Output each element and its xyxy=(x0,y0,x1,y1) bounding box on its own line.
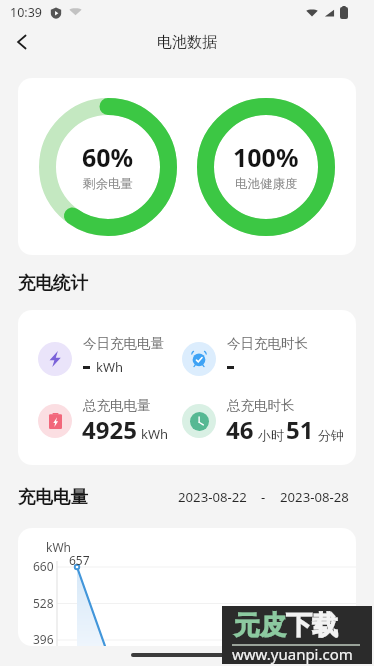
staticText: 4925 xyxy=(82,413,137,446)
staticText: 10:39 xyxy=(10,4,42,21)
staticText: 60% xyxy=(82,140,134,174)
button[interactable]: 总充电时长 xyxy=(162,394,356,444)
staticText: 电池健康度 xyxy=(235,176,298,192)
staticText: 电池数据 xyxy=(157,33,217,52)
staticText: 剩余电量 xyxy=(83,176,133,192)
staticText: 总充电时长 xyxy=(227,397,295,414)
staticText: kWh xyxy=(96,358,124,376)
staticText: 100% xyxy=(233,140,299,174)
staticText: 今日充电电量 xyxy=(83,335,164,352)
staticText: 2023-08-22 xyxy=(178,488,247,506)
button[interactable]: 今日充电电量 xyxy=(18,332,162,382)
staticText: 660 xyxy=(33,558,54,574)
staticText: 396 xyxy=(33,631,54,646)
staticText: 51 xyxy=(286,413,314,446)
staticText: 657 xyxy=(69,552,90,568)
staticText: 46 xyxy=(226,413,254,446)
staticText: 下载 xyxy=(286,609,338,642)
staticText: 元皮 xyxy=(234,609,286,642)
staticText: 总充电电量 xyxy=(83,397,151,414)
button[interactable]: 总充电电量 xyxy=(18,394,162,444)
staticText: kWh xyxy=(46,539,71,555)
staticText: 充电统计 xyxy=(18,272,88,294)
button[interactable]: 今日充电时长 xyxy=(162,332,356,382)
staticText: www.yuanpi.com xyxy=(232,644,353,664)
staticText: 充电电量 xyxy=(18,486,88,508)
staticText: - xyxy=(261,488,266,506)
staticText: 小时 xyxy=(258,427,284,443)
staticText: 今日充电时长 xyxy=(227,335,308,352)
staticText: 分钟 xyxy=(318,427,344,443)
staticText: 2023-08-28 xyxy=(280,488,349,506)
staticText: kWh xyxy=(141,425,169,443)
staticText: 528 xyxy=(33,595,54,611)
button[interactable]: Back xyxy=(0,24,44,60)
